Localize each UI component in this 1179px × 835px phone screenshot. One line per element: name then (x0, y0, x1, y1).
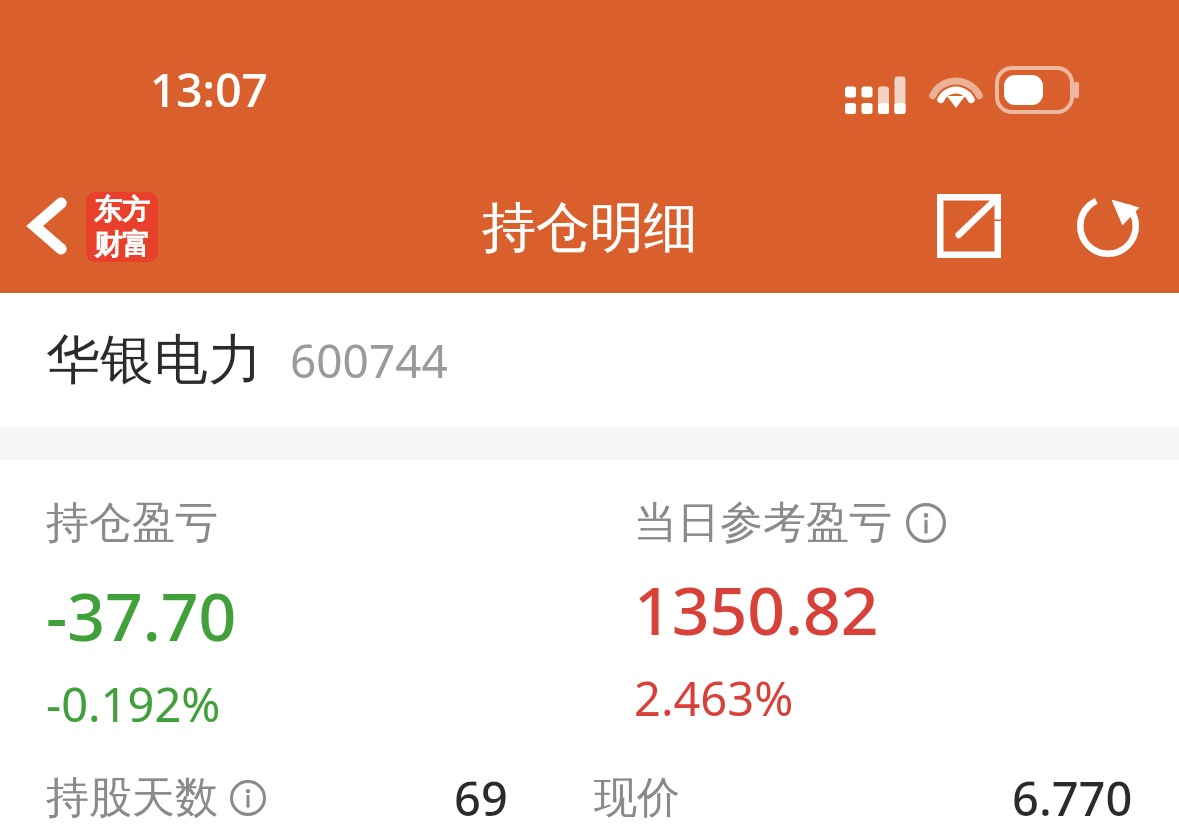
button[interactable]: Info (906, 503, 946, 543)
staticText: -0.192% (46, 672, 221, 736)
button[interactable]: Refresh (1056, 178, 1160, 274)
staticText: 华银电力 (46, 326, 262, 394)
button[interactable]: Back (6, 176, 92, 276)
button[interactable]: Share (916, 178, 1022, 274)
staticText: 1350.82 (634, 564, 879, 654)
staticText: 东方 (94, 192, 150, 227)
staticText: 当日参考盈亏 (634, 496, 892, 550)
staticText: 6.770 (1012, 766, 1133, 830)
staticText: 持仓盈亏 (46, 496, 218, 550)
staticText: 13:07 (150, 58, 268, 121)
button[interactable]: 华银电力 (0, 293, 1179, 427)
staticText: 69 (454, 766, 508, 830)
staticText: 持仓明细 (482, 194, 698, 262)
button[interactable]: East Money (86, 192, 158, 262)
staticText: 600744 (290, 329, 448, 392)
staticText: 持股天数 (46, 771, 218, 825)
staticText: 财富 (94, 227, 150, 262)
staticText: -37.70 (46, 570, 237, 660)
staticText: 2.463% (634, 666, 794, 730)
button[interactable]: 持股天数 (0, 762, 1179, 834)
staticText: 现价 (594, 771, 680, 825)
